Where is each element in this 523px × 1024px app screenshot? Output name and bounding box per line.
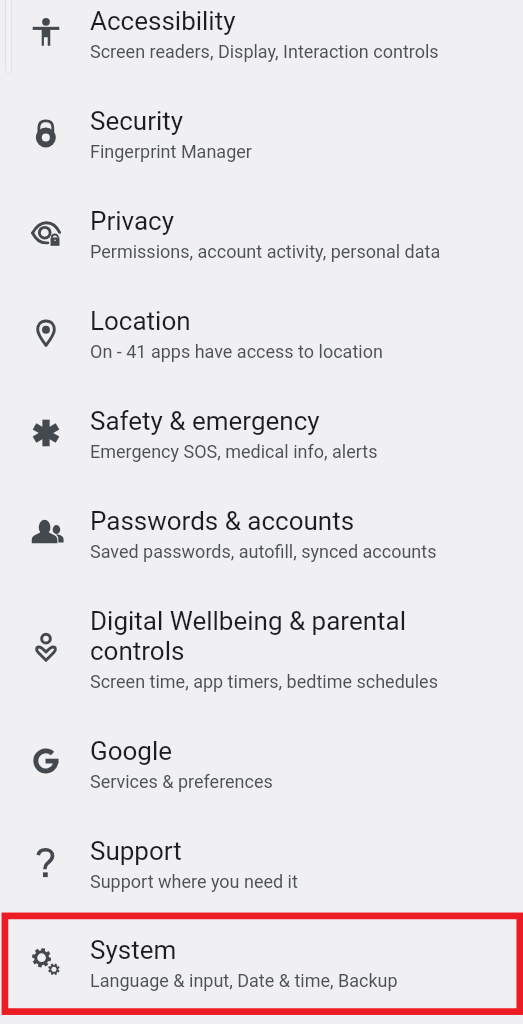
- button[interactable]: Privacy: [0, 199, 523, 299]
- staticText: Location: [90, 306, 520, 336]
- staticText: Security: [90, 106, 520, 136]
- button[interactable]: Support: [0, 829, 523, 929]
- button[interactable]: Passwords and accounts: [0, 499, 523, 599]
- button[interactable]: Google: [0, 729, 523, 829]
- staticText: Digital Wellbeing & parental controls: [90, 606, 420, 666]
- staticText: Screen time, app timers, bedtime schedul…: [90, 671, 438, 692]
- staticText: Support where you need it: [90, 871, 298, 892]
- staticText: Screen readers, Display, Interaction con…: [90, 41, 439, 62]
- staticText: Language & input, Date & time, Backup: [90, 970, 398, 991]
- staticText: Saved passwords, autofill, synced accoun…: [90, 541, 437, 562]
- staticText: Accessibility: [90, 6, 520, 36]
- button[interactable]: Safety and emergency: [0, 399, 523, 499]
- button[interactable]: System: [0, 928, 523, 1024]
- button[interactable]: Security: [0, 99, 523, 199]
- staticText: Emergency SOS, medical info, alerts: [90, 441, 378, 462]
- staticText: Fingerprint Manager: [90, 141, 252, 162]
- staticText: Privacy: [90, 206, 520, 236]
- staticText: Support: [90, 836, 520, 866]
- staticText: On - 41 apps have access to location: [90, 341, 383, 362]
- button[interactable]: Accessibility: [0, 0, 523, 99]
- staticText: System: [90, 935, 520, 965]
- button[interactable]: Digital Wellbeing and parental controls: [0, 599, 523, 729]
- staticText: Google: [90, 736, 520, 766]
- staticText: Passwords & accounts: [90, 506, 520, 536]
- staticText: Services & preferences: [90, 771, 273, 792]
- staticText: Permissions, account activity, personal …: [90, 241, 441, 262]
- button[interactable]: Location: [0, 299, 523, 399]
- staticText: Safety & emergency: [90, 406, 520, 436]
